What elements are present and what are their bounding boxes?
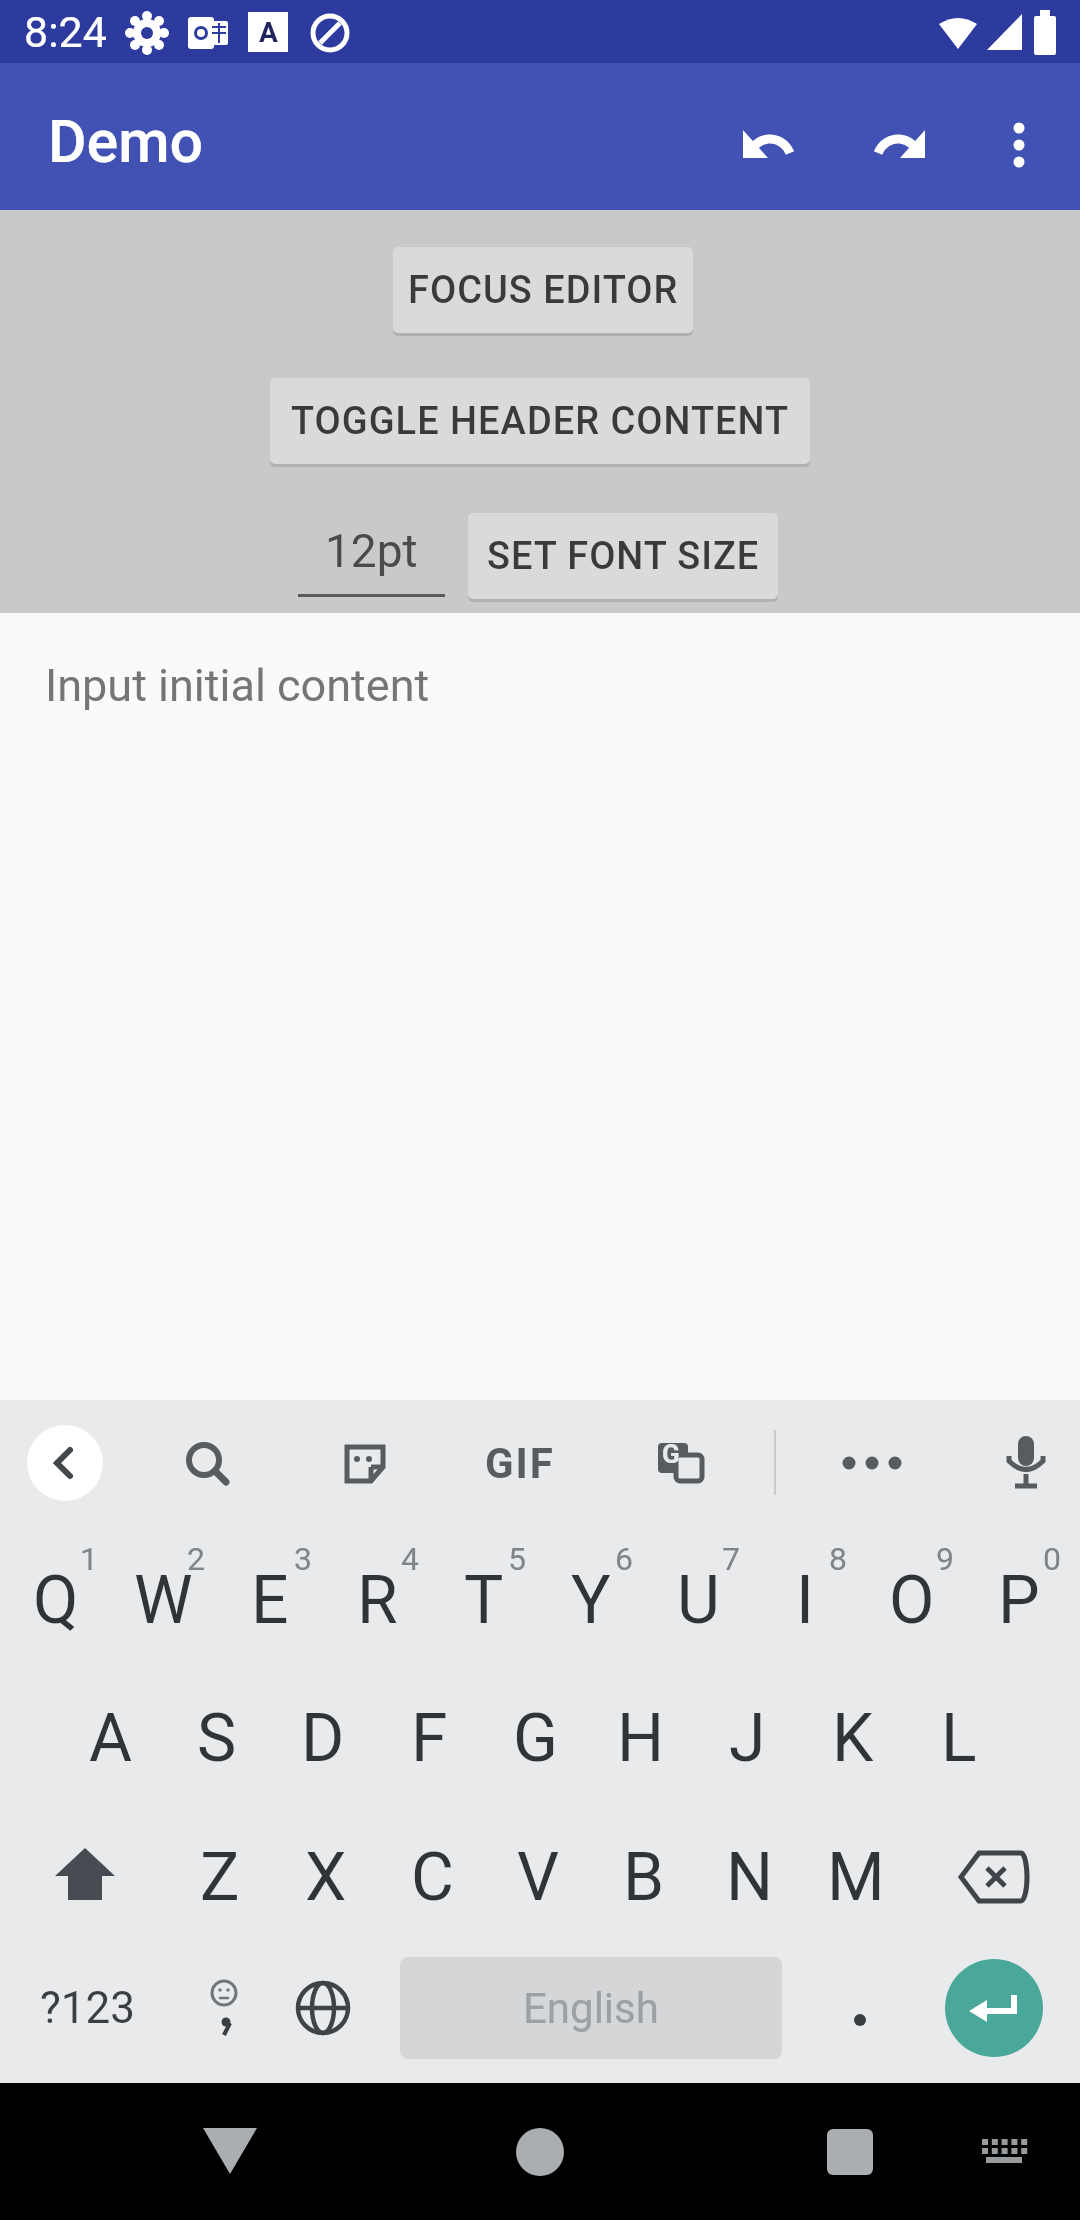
- button[interactable]: GIF: [465, 1423, 575, 1503]
- button[interactable]: K: [800, 1669, 906, 1807]
- staticText: Demo: [48, 107, 204, 176]
- staticText: R: [357, 1562, 398, 1639]
- button[interactable]: TOGGLE HEADER CONTENT: [270, 378, 810, 464]
- button[interactable]: A: [58, 1669, 164, 1807]
- button[interactable]: [986, 1423, 1066, 1503]
- staticText: 2: [187, 1540, 205, 1578]
- button[interactable]: [945, 2083, 1065, 2220]
- staticText: Q: [33, 1562, 79, 1639]
- button[interactable]: U: [645, 1531, 751, 1669]
- button[interactable]: H: [588, 1669, 694, 1807]
- button[interactable]: [933, 1808, 1053, 1946]
- staticText: L: [941, 1700, 977, 1777]
- button[interactable]: E: [217, 1531, 323, 1669]
- staticText: FOCUS EDITOR: [408, 268, 679, 313]
- staticText: G: [662, 1439, 680, 1469]
- staticText: 4: [401, 1540, 419, 1578]
- staticText: TOGGLE HEADER CONTENT: [291, 399, 790, 444]
- button[interactable]: [25, 1808, 145, 1946]
- staticText: P: [998, 1562, 1040, 1639]
- button[interactable]: X: [273, 1808, 379, 1946]
- staticText: English: [523, 1984, 659, 2033]
- button[interactable]: V: [485, 1808, 591, 1946]
- button[interactable]: [273, 1943, 373, 2073]
- staticText: Z: [200, 1839, 240, 1916]
- button[interactable]: [832, 1423, 912, 1503]
- staticText: 0: [1043, 1540, 1061, 1578]
- staticText: A: [259, 16, 278, 49]
- staticText: N: [726, 1839, 774, 1916]
- staticText: 12pt: [325, 524, 418, 578]
- staticText: 5: [508, 1540, 526, 1578]
- staticText: ?123: [40, 1982, 135, 2034]
- button[interactable]: 12pt: [298, 505, 445, 597]
- staticText: T: [464, 1562, 504, 1639]
- staticText: B: [623, 1839, 665, 1916]
- staticText: Y: [571, 1562, 611, 1639]
- staticText: I: [796, 1562, 814, 1639]
- button[interactable]: [168, 1943, 268, 2073]
- button[interactable]: L: [906, 1669, 1012, 1807]
- staticText: U: [677, 1562, 720, 1639]
- staticText: GIF: [485, 1439, 555, 1488]
- button[interactable]: C: [379, 1808, 485, 1946]
- staticText: Input initial content: [45, 659, 430, 712]
- staticText: W: [134, 1562, 193, 1639]
- staticText: 9: [936, 1540, 954, 1578]
- button[interactable]: [810, 1943, 910, 2073]
- button[interactable]: Input initial content: [0, 613, 1080, 1400]
- button[interactable]: M: [803, 1808, 909, 1946]
- staticText: 7: [722, 1540, 740, 1578]
- button[interactable]: P: [966, 1531, 1072, 1669]
- button[interactable]: S: [164, 1669, 270, 1807]
- button[interactable]: [160, 2083, 300, 2220]
- staticText: 6: [615, 1540, 633, 1578]
- button[interactable]: O: [859, 1531, 965, 1669]
- button[interactable]: English: [400, 1957, 782, 2059]
- staticText: F: [411, 1700, 448, 1777]
- button[interactable]: T: [431, 1531, 537, 1669]
- staticText: D: [301, 1700, 345, 1777]
- staticText: O: [889, 1562, 935, 1639]
- staticText: X: [305, 1839, 347, 1916]
- staticText: S: [197, 1700, 237, 1777]
- button[interactable]: FOCUS EDITOR: [393, 247, 693, 333]
- button[interactable]: [729, 105, 809, 185]
- button[interactable]: SET FONT SIZE: [468, 513, 778, 599]
- staticText: A: [89, 1700, 133, 1777]
- button[interactable]: [27, 1425, 103, 1501]
- button[interactable]: D: [270, 1669, 376, 1807]
- button[interactable]: G: [640, 1423, 720, 1503]
- button[interactable]: I: [752, 1531, 858, 1669]
- staticText: M: [827, 1839, 885, 1916]
- button[interactable]: Z: [167, 1808, 273, 1946]
- button[interactable]: ?123: [17, 1943, 157, 2073]
- button[interactable]: [780, 2083, 920, 2220]
- button[interactable]: [859, 105, 939, 185]
- button[interactable]: [167, 1423, 247, 1503]
- staticText: E: [251, 1562, 289, 1639]
- button[interactable]: [470, 2083, 610, 2220]
- button[interactable]: [979, 105, 1059, 185]
- staticText: K: [832, 1700, 874, 1777]
- button[interactable]: R: [324, 1531, 430, 1669]
- button[interactable]: F: [376, 1669, 482, 1807]
- staticText: H: [617, 1700, 665, 1777]
- staticText: V: [517, 1839, 560, 1916]
- button[interactable]: W: [110, 1531, 216, 1669]
- button[interactable]: N: [697, 1808, 803, 1946]
- button[interactable]: Q: [3, 1531, 109, 1669]
- staticText: G: [513, 1700, 558, 1777]
- button[interactable]: [325, 1423, 405, 1503]
- button[interactable]: G: [482, 1669, 588, 1807]
- staticText: 1: [80, 1540, 98, 1578]
- button[interactable]: Y: [538, 1531, 644, 1669]
- staticText: 8:24: [24, 7, 107, 57]
- button[interactable]: [945, 1959, 1043, 2057]
- staticText: C: [411, 1839, 454, 1916]
- button[interactable]: J: [694, 1669, 800, 1807]
- staticText: SET FONT SIZE: [487, 534, 760, 579]
- button[interactable]: B: [591, 1808, 697, 1946]
- staticText: 3: [294, 1540, 312, 1578]
- staticText: J: [729, 1700, 766, 1777]
